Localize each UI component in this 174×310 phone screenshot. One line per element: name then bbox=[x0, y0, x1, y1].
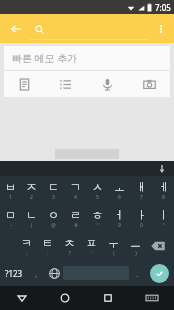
button[interactable]: Backspace bbox=[146, 232, 169, 260]
staticText: 빠른 메모 추가 bbox=[12, 51, 78, 65]
staticText: ㅐ bbox=[136, 180, 147, 194]
button[interactable]: Home bbox=[43, 286, 86, 310]
button[interactable]: , bbox=[28, 260, 45, 286]
staticText: ㄴ bbox=[26, 208, 37, 222]
staticText: ㄹ bbox=[70, 208, 81, 222]
staticText: ㅋ bbox=[21, 236, 32, 250]
staticText: ?123 bbox=[5, 268, 23, 279]
staticText: 8 bbox=[162, 194, 165, 201]
staticText: ( bbox=[113, 250, 115, 257]
button[interactable]: ㄹ bbox=[64, 204, 86, 232]
staticText: 0 bbox=[140, 222, 143, 229]
staticText: ° bbox=[162, 222, 165, 229]
other: Search bbox=[30, 20, 48, 38]
staticText: ㅊ bbox=[64, 236, 75, 250]
staticText: ' bbox=[91, 250, 93, 257]
staticText: ㅅ bbox=[92, 180, 103, 194]
button[interactable]: Back bbox=[0, 286, 43, 310]
button[interactable]: Hide keyboard bbox=[156, 163, 168, 175]
staticText: ㅏ bbox=[136, 208, 147, 222]
button[interactable]: ㅣ bbox=[152, 204, 174, 232]
button[interactable]: ㅐ bbox=[130, 176, 152, 204]
button[interactable]: ?123 bbox=[0, 260, 28, 286]
staticText: 2 bbox=[30, 194, 33, 201]
button[interactable]: ㅜ bbox=[102, 232, 124, 260]
button[interactable]: Back bbox=[6, 19, 26, 39]
button[interactable]: Voice note bbox=[86, 71, 128, 97]
staticText: ㅍ bbox=[86, 236, 97, 250]
button[interactable]: ㅂ bbox=[0, 176, 21, 204]
button[interactable]: Keyboard bbox=[130, 286, 174, 310]
staticText: ㅜ bbox=[108, 236, 119, 250]
button[interactable]: ㅇ bbox=[42, 204, 64, 232]
button[interactable]: ㅗ bbox=[108, 176, 130, 204]
button[interactable]: ㅊ bbox=[58, 232, 80, 260]
staticText: : bbox=[47, 250, 49, 257]
staticText: ; bbox=[26, 250, 28, 257]
button[interactable]: Change language bbox=[45, 260, 63, 286]
staticText: ㅌ bbox=[42, 236, 53, 250]
button[interactable]: ㄷ bbox=[42, 176, 64, 204]
staticText: 6 bbox=[118, 194, 121, 201]
button[interactable]: ㅍ bbox=[80, 232, 102, 260]
staticText: 1 bbox=[9, 194, 12, 201]
staticText: ㅣ bbox=[158, 208, 169, 222]
button[interactable]: ㄴ bbox=[21, 204, 42, 232]
button[interactable]: ㅅ bbox=[86, 176, 108, 204]
staticText: @ bbox=[51, 222, 56, 229]
staticText: | bbox=[30, 222, 33, 229]
staticText: 7:05 bbox=[155, 2, 171, 13]
staticText: 9 bbox=[118, 222, 121, 229]
button[interactable]: 빠른 메모 추가 bbox=[4, 46, 170, 70]
button[interactable]: ㅈ bbox=[21, 176, 42, 204]
staticText: ° bbox=[96, 222, 99, 229]
staticText: ㅎ bbox=[92, 208, 103, 222]
staticText: 4 bbox=[74, 194, 77, 201]
staticText: . bbox=[136, 267, 139, 279]
staticText: ㅡ bbox=[130, 236, 141, 250]
button[interactable]: ㅡ bbox=[124, 232, 146, 260]
button[interactable]: ㅔ bbox=[152, 176, 174, 204]
button[interactable]: New list bbox=[45, 71, 86, 97]
staticText: ㅁ bbox=[5, 208, 16, 222]
staticText: ㅔ bbox=[158, 180, 169, 194]
button[interactable]: ㅌ bbox=[37, 232, 58, 260]
staticText: ㄷ bbox=[48, 180, 59, 194]
staticText: ㅓ bbox=[114, 208, 125, 222]
button[interactable]: . bbox=[129, 260, 145, 286]
button[interactable]: ㅏ bbox=[130, 204, 152, 232]
staticText: ? bbox=[68, 250, 71, 257]
button[interactable]: ㅎ bbox=[86, 204, 108, 232]
staticText: ㅂ bbox=[5, 180, 16, 194]
button[interactable]: Photo note bbox=[128, 71, 170, 97]
button[interactable]: Search bbox=[30, 17, 148, 41]
button[interactable]: ㅁ bbox=[0, 204, 21, 232]
staticText: 7 bbox=[140, 194, 143, 201]
staticText: 5 bbox=[96, 194, 99, 201]
button[interactable]: More options bbox=[151, 19, 171, 39]
staticText: 3 bbox=[52, 194, 55, 201]
button[interactable]: ㄱ bbox=[64, 176, 86, 204]
staticText: ) bbox=[135, 250, 137, 257]
button[interactable]: ㅓ bbox=[108, 204, 130, 232]
button[interactable]: Enter bbox=[150, 264, 169, 283]
staticText: ㅗ bbox=[114, 180, 125, 194]
staticText: ㅈ bbox=[26, 180, 37, 194]
button[interactable]: New note bbox=[4, 71, 45, 97]
staticText: ㄱ bbox=[70, 180, 81, 194]
staticText: # bbox=[74, 222, 78, 229]
staticText: , bbox=[35, 267, 38, 279]
button[interactable]: Recent apps bbox=[86, 286, 130, 310]
button[interactable]: ㅋ bbox=[16, 232, 37, 260]
staticText: - bbox=[10, 222, 12, 229]
staticText: ㅇ bbox=[48, 208, 59, 222]
